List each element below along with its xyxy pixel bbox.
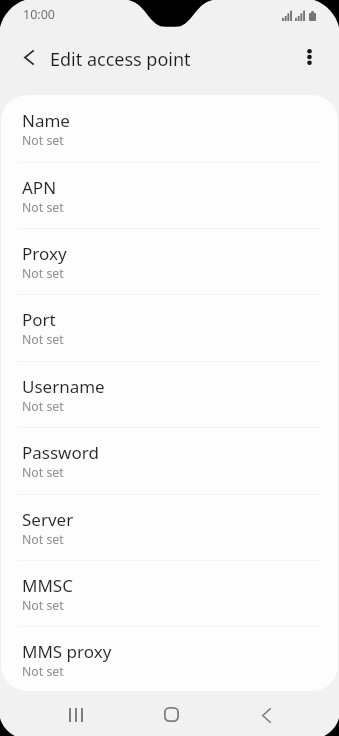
button[interactable]: APN [1,161,338,227]
staticText: Proxy [22,242,67,265]
button[interactable]: Server [1,493,338,559]
button[interactable]: Proxy [1,227,338,293]
staticText: APN [22,176,57,199]
button[interactable]: Navigate up [7,35,51,79]
staticText: 10:00 [23,6,55,23]
staticText: Edit access point [50,47,191,72]
button[interactable]: Home [148,691,194,736]
button[interactable]: Username [1,360,338,426]
staticText: Username [22,375,105,398]
staticText: Server [22,508,74,531]
staticText: Password [22,441,99,464]
button[interactable]: MMS proxy [1,625,338,691]
button[interactable]: MMSC [1,559,338,625]
staticText: Port [22,308,56,331]
staticText: Not set [22,531,64,548]
staticText: MMS proxy [22,640,112,663]
staticText: Not set [22,265,64,282]
button[interactable]: More options [287,35,331,79]
staticText: Name [22,109,70,132]
staticText: Not set [22,199,64,216]
staticText: Not set [22,331,64,348]
staticText: Not set [22,132,64,149]
button[interactable]: Back [243,692,289,736]
button[interactable]: Recent apps [53,692,99,736]
staticText: Not set [22,464,64,481]
button[interactable]: Password [1,426,338,492]
staticText: Not set [22,597,64,614]
button[interactable]: Port [1,293,338,359]
button[interactable]: Name [1,95,338,160]
staticText: MMSC [22,574,73,597]
staticText: Not set [22,398,64,415]
staticText: Not set [22,663,64,680]
